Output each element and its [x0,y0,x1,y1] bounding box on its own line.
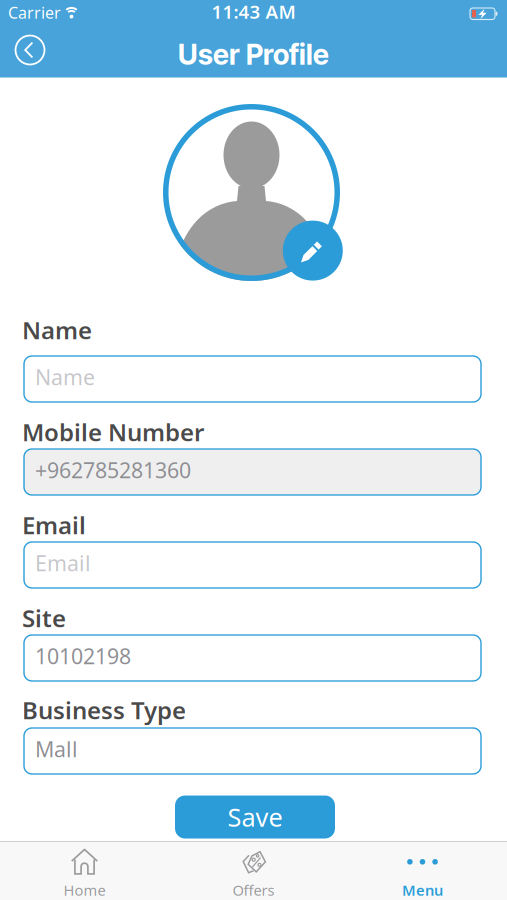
button[interactable]: Offers [169,842,338,900]
staticText: Mobile Number [22,416,204,448]
button[interactable]: Name [24,356,481,402]
staticText: Home [63,880,105,900]
button[interactable]: Back [10,30,50,70]
staticText: Menu [402,880,443,900]
button[interactable]: Save [175,795,335,838]
staticText: Name [22,314,92,346]
staticText: Offers [232,880,274,900]
button[interactable]: Home [0,842,169,900]
button[interactable]: 10102198 [24,635,481,681]
staticText: +962785281360 [35,456,191,484]
button[interactable]: Mall [24,728,481,774]
button[interactable]: Edit profile photo [163,104,346,287]
staticText: 10102198 [35,642,131,670]
staticText: Email [35,549,91,577]
staticText: Email [22,509,86,541]
staticText: Site [22,602,66,634]
staticText: Business Type [22,694,186,726]
staticText: Mall [35,735,78,763]
button[interactable]: +962785281360 [24,449,481,495]
staticText: 11:43 AM [211,0,295,24]
staticText: Carrier [8,2,61,23]
staticText: Name [35,363,95,391]
staticText: Save [227,800,282,834]
staticText: User Profile [178,37,329,71]
button[interactable]: Menu [338,842,507,900]
button[interactable]: Email [24,542,481,588]
